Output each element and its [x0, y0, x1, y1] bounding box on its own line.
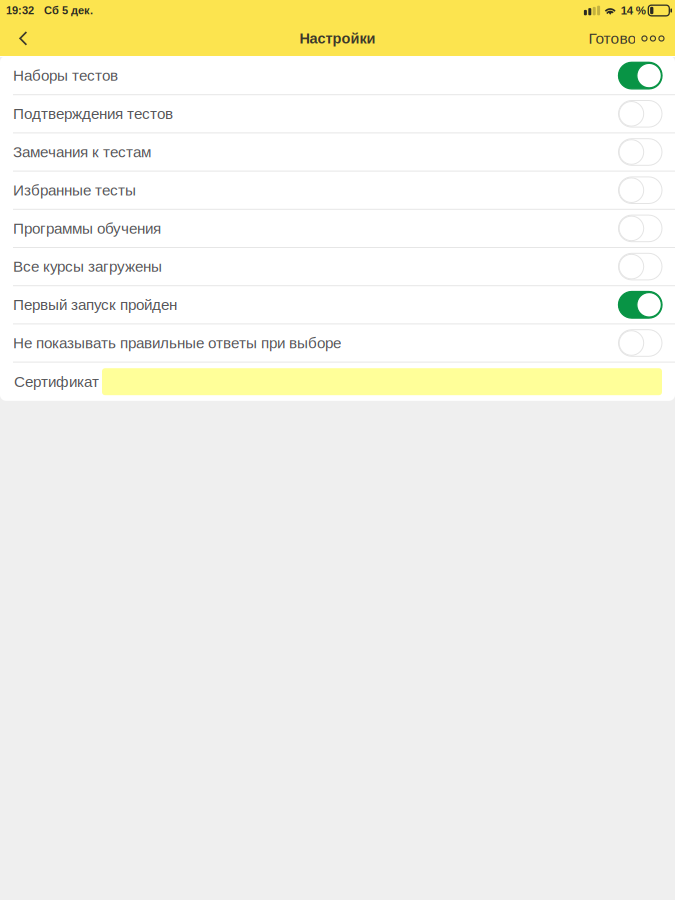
button[interactable]: Включено: [618, 291, 662, 318]
button[interactable]: Выключено: [618, 177, 662, 203]
staticText: 14 %: [621, 4, 646, 17]
staticText: Замечания к тестам: [13, 143, 151, 160]
button[interactable]: Сертификат: [102, 368, 662, 395]
staticText: Готово: [588, 30, 636, 47]
button[interactable]: Программы обучения: [0, 210, 675, 248]
button[interactable]: Выключено: [618, 330, 662, 356]
button[interactable]: Избранные тесты: [0, 172, 675, 210]
staticText: 19:32: [6, 4, 34, 17]
staticText: Первый запуск пройден: [13, 296, 177, 313]
staticText: Сб 5 дек.: [44, 4, 93, 17]
staticText: Подтверждения тестов: [13, 105, 173, 122]
button[interactable]: Подтверждения тестов: [0, 95, 675, 133]
staticText: Избранные тесты: [13, 182, 136, 199]
button[interactable]: Включено: [618, 62, 662, 89]
button[interactable]: Все курсы загружены: [0, 248, 675, 286]
staticText: Не показывать правильные ответы при выбо…: [13, 334, 341, 351]
staticText: Все курсы загружены: [13, 258, 162, 275]
button[interactable]: Наборы тестов: [0, 57, 675, 95]
button[interactable]: Замечания к тестам: [0, 133, 675, 172]
button[interactable]: Первый запуск пройден: [0, 286, 675, 324]
button[interactable]: Выключено: [618, 139, 662, 165]
button[interactable]: Готово: [579, 24, 675, 53]
staticText: Сертификат: [14, 373, 99, 390]
button[interactable]: Выключено: [618, 253, 662, 280]
button[interactable]: Не показывать правильные ответы при выбо…: [0, 324, 675, 363]
staticText: Настройки: [299, 30, 375, 47]
button[interactable]: Назад: [0, 23, 41, 54]
button[interactable]: Выключено: [618, 215, 662, 242]
button[interactable]: Выключено: [618, 100, 662, 127]
staticText: Программы обучения: [13, 220, 161, 237]
staticText: Наборы тестов: [13, 67, 118, 84]
